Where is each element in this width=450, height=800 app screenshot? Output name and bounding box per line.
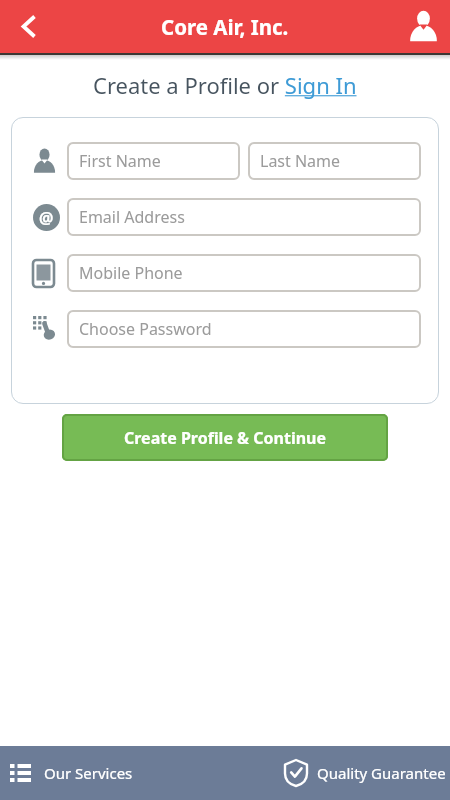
- button[interactable]: Quality Guarantee: [285, 746, 446, 800]
- staticText: Last Name: [260, 150, 341, 172]
- staticText: First Name: [79, 150, 161, 172]
- staticText: Mobile Phone: [79, 262, 183, 284]
- button[interactable]: Choose Password: [67, 310, 421, 348]
- staticText: Quality Guarantee: [317, 763, 446, 783]
- staticText: Core Air, Inc.: [161, 13, 289, 41]
- button[interactable]: [0, 0, 56, 53]
- staticText: Email Address: [79, 206, 185, 228]
- button[interactable]: Mobile Phone: [67, 254, 421, 292]
- button[interactable]: [397, 0, 450, 53]
- staticText: Our Services: [44, 763, 133, 783]
- staticText: Create Profile & Continue: [124, 427, 327, 449]
- button[interactable]: Our Services: [10, 746, 133, 800]
- staticText: @: [39, 207, 54, 229]
- button[interactable]: Create a Profile or Sign In: [93, 70, 357, 100]
- button[interactable]: First Name: [67, 142, 240, 180]
- staticText: Choose Password: [79, 318, 212, 340]
- button[interactable]: Create Profile & Continue: [62, 414, 388, 461]
- button[interactable]: Email Address: [67, 198, 421, 236]
- button[interactable]: Last Name: [248, 142, 421, 180]
